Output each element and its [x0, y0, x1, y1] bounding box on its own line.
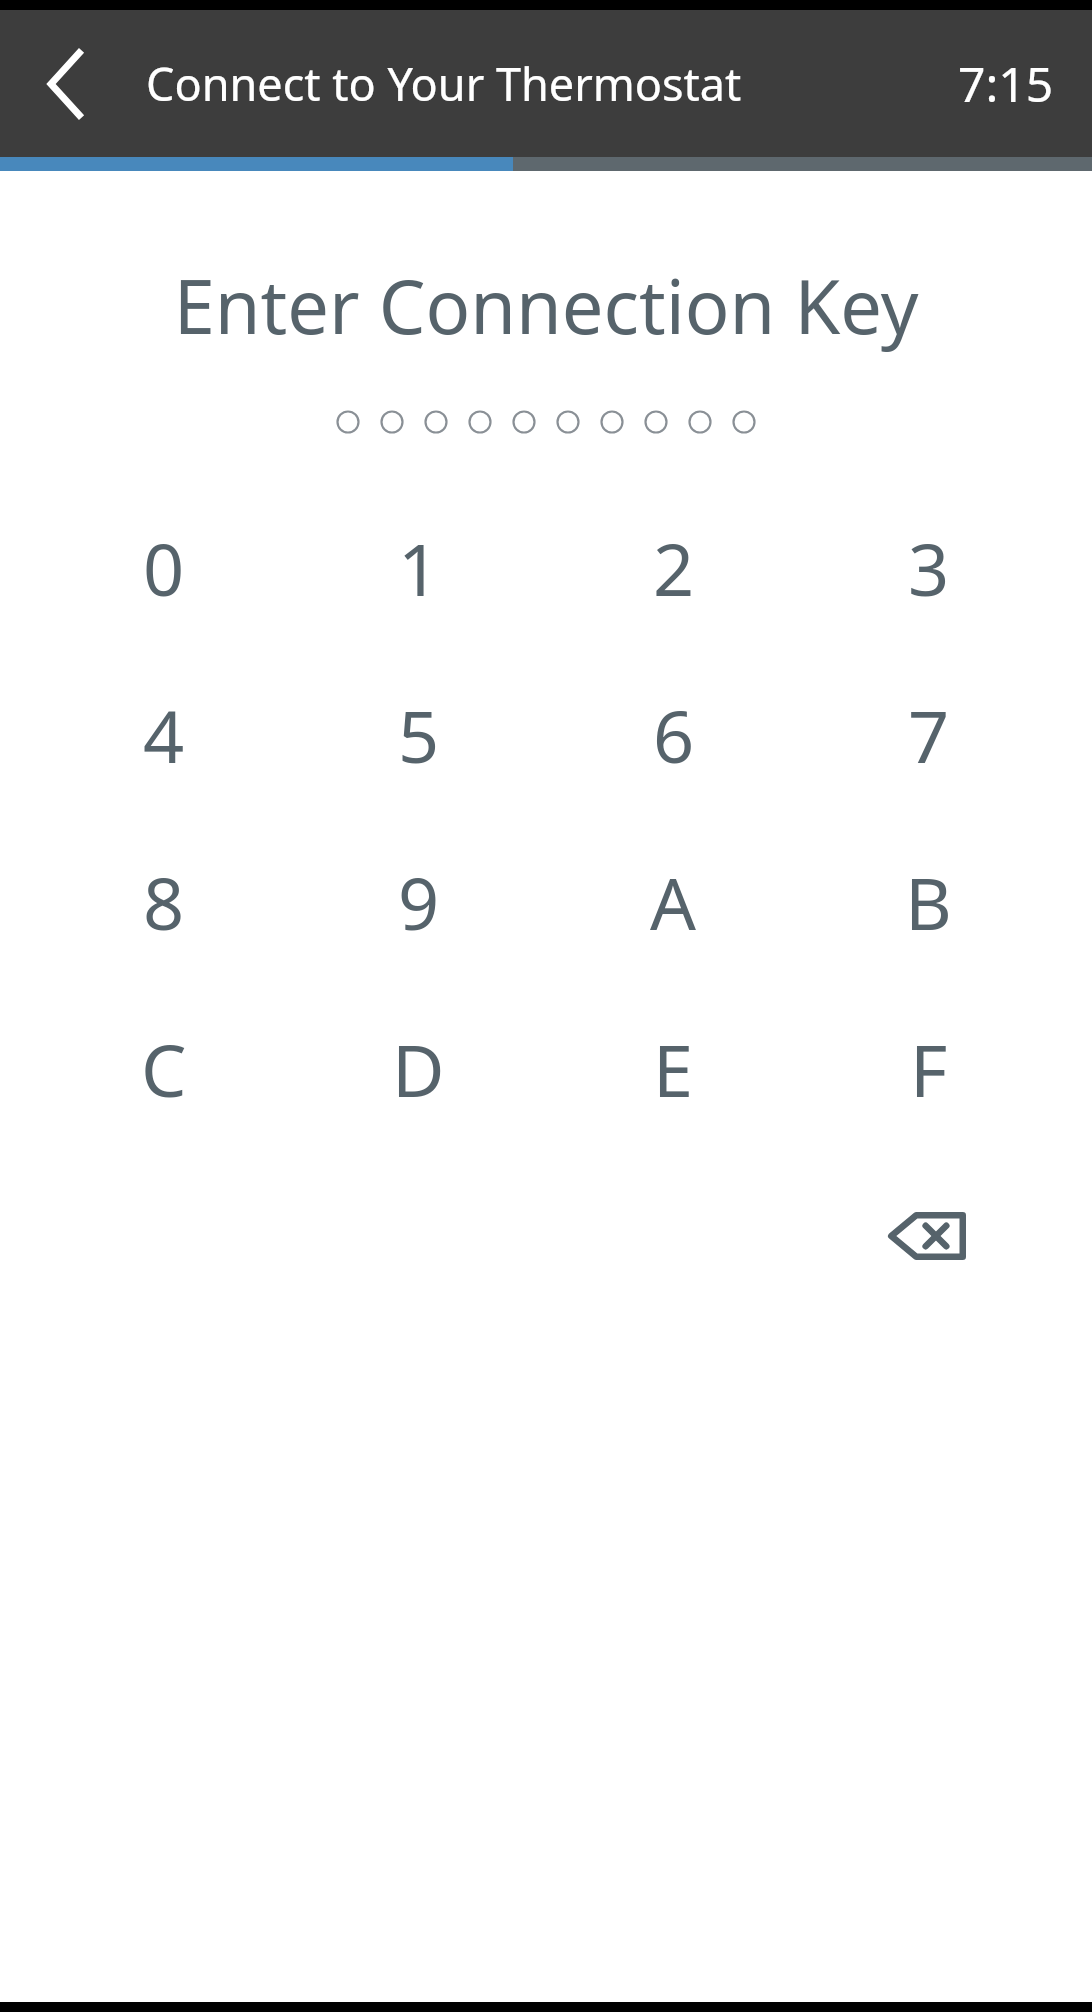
staticText: 6 [653, 686, 695, 784]
button[interactable]: 3 [801, 484, 1056, 651]
button[interactable]: 2 [546, 484, 801, 651]
button[interactable]: 6 [546, 651, 801, 818]
staticText: E [653, 1020, 694, 1118]
staticText: 2 [653, 519, 695, 617]
staticText: 7:15 [958, 51, 1054, 116]
staticText: 3 [908, 519, 950, 617]
staticText: 5 [398, 686, 440, 784]
button[interactable]: 0 [36, 484, 291, 651]
staticText: 8 [143, 853, 185, 951]
staticText: F [910, 1020, 948, 1118]
button[interactable]: E [546, 985, 801, 1152]
button[interactable]: F [801, 985, 1056, 1152]
button[interactable]: 9 [291, 818, 546, 985]
staticText: 0 [143, 519, 185, 617]
button[interactable]: 5 [291, 651, 546, 818]
button[interactable]: 4 [36, 651, 291, 818]
staticText: 7 [908, 686, 950, 784]
staticText: C [141, 1020, 187, 1118]
button[interactable]: A [546, 818, 801, 985]
staticText: B [905, 853, 952, 951]
staticText: A [650, 853, 697, 951]
button[interactable]: 7 [801, 651, 1056, 818]
button[interactable]: 8 [36, 818, 291, 985]
button[interactable]: D [291, 985, 546, 1152]
button[interactable]: C [36, 985, 291, 1152]
button[interactable]: B [801, 818, 1056, 985]
button[interactable]: Backspace [801, 1152, 1056, 1319]
button[interactable]: Back [28, 36, 104, 132]
staticText: Connect to Your Thermostat [146, 53, 742, 114]
staticText: 1 [398, 519, 440, 617]
staticText: 4 [143, 686, 185, 784]
staticText: 9 [398, 853, 440, 951]
button[interactable]: 1 [291, 484, 546, 651]
staticText: D [392, 1020, 445, 1118]
staticText: Enter Connection Key [0, 255, 1092, 356]
